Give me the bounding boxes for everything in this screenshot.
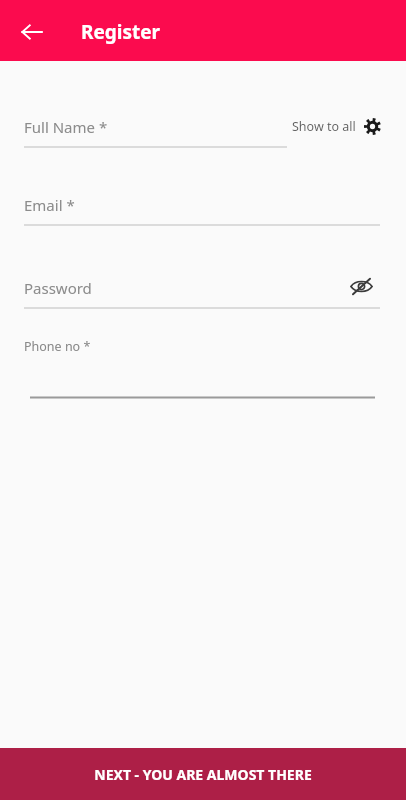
button[interactable]: Email *	[0, 186, 406, 226]
button[interactable]: Full Name *	[0, 108, 287, 148]
staticText: Phone no *	[24, 338, 91, 355]
staticText: NEXT - YOU ARE ALMOST THERE	[94, 765, 312, 784]
button[interactable]: NEXT - YOU ARE ALMOST THERE	[0, 748, 406, 800]
staticText: Register	[81, 19, 161, 45]
staticText: Email *	[24, 195, 75, 215]
button[interactable]: Back	[10, 10, 54, 54]
button[interactable]: Show password	[340, 265, 382, 307]
button[interactable]: Phone no *	[0, 336, 406, 399]
button[interactable]: Password	[0, 269, 406, 309]
button[interactable]: Show to all	[292, 111, 381, 141]
staticText: Password	[24, 278, 92, 298]
staticText: Full Name *	[24, 117, 108, 137]
staticText: Show to all	[292, 118, 356, 135]
other: Privacy settings	[364, 118, 381, 135]
